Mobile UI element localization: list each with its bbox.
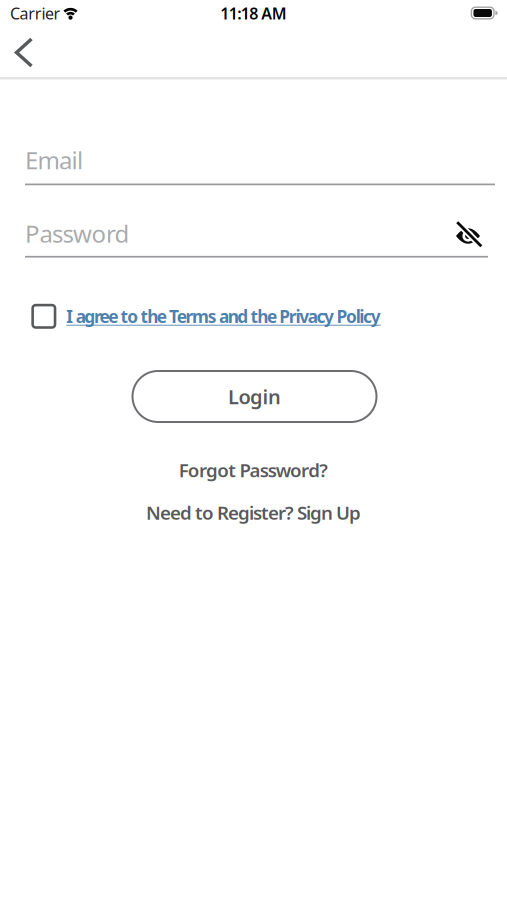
button[interactable]: Need to Register? Sign Up <box>146 500 361 525</box>
staticText: I agree to the Terms and the Privacy Pol… <box>66 305 381 328</box>
staticText: Login <box>228 383 281 410</box>
button[interactable]: Back <box>2 30 46 74</box>
button[interactable]: I agree to the Terms and the Privacy Pol… <box>31 304 381 329</box>
button[interactable]: Forgot Password? <box>179 458 328 482</box>
button[interactable]: Show password <box>446 214 490 258</box>
staticText: Carrier <box>10 3 61 24</box>
button[interactable]: Login <box>131 370 377 423</box>
staticText: Need to Register? Sign Up <box>146 500 361 525</box>
staticText: Password <box>25 218 129 249</box>
staticText: Forgot Password? <box>179 458 328 482</box>
staticText: Email <box>25 144 83 176</box>
staticText: 11:18 AM <box>220 3 287 24</box>
